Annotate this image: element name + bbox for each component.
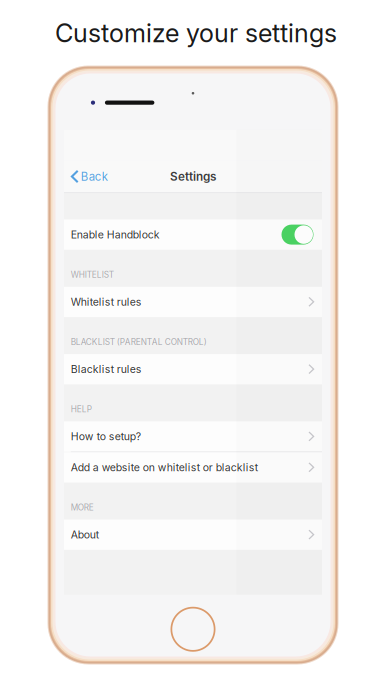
staticText: Add a website on whitelist or blacklist <box>71 461 258 474</box>
button[interactable]: Back <box>64 163 116 189</box>
button[interactable]: How to setup? <box>64 421 322 452</box>
staticText: MORE <box>71 502 94 512</box>
staticText: How to setup? <box>71 430 141 443</box>
staticText: Back <box>81 170 108 183</box>
staticText: Blacklist rules <box>71 363 142 375</box>
button[interactable]: Add a website on whitelist or blacklist <box>64 452 322 482</box>
button[interactable]: Blacklist rules <box>64 354 322 384</box>
staticText: HELP <box>71 404 92 414</box>
button[interactable]: Enable Handblock <box>64 219 322 250</box>
staticText: Customize your settings <box>55 18 337 48</box>
staticText: Whitelist rules <box>71 295 142 308</box>
staticText: WHITELIST <box>71 270 114 280</box>
staticText: BLACKLIST (PARENTAL CONTROL) <box>71 337 207 347</box>
button[interactable]: Whitelist rules <box>64 287 322 317</box>
button[interactable]: About <box>64 519 322 550</box>
staticText: About <box>71 528 99 541</box>
staticText: Settings <box>170 169 216 184</box>
staticText: Enable Handblock <box>71 228 160 241</box>
